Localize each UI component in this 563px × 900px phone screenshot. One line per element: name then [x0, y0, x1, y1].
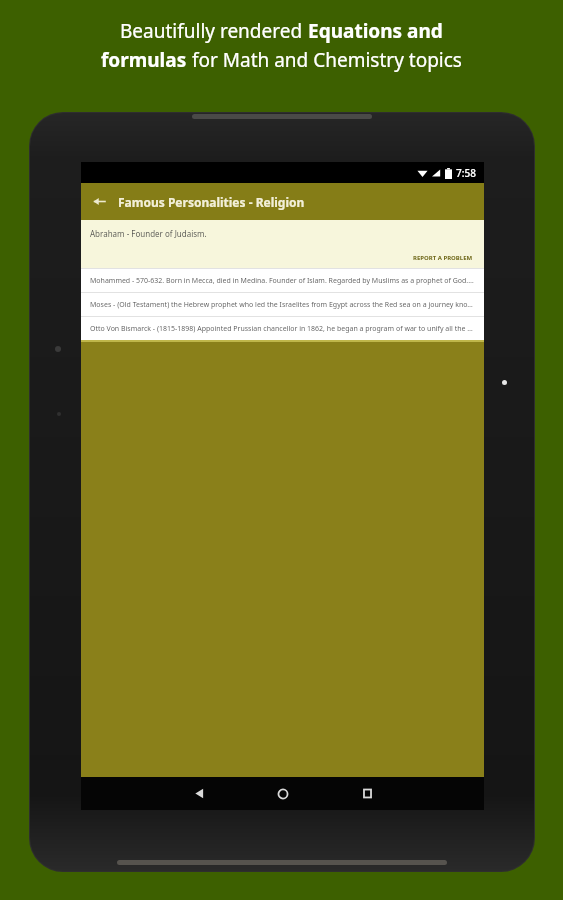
button[interactable]: Moses - (Old Testament) the Hebrew proph… [81, 293, 484, 316]
staticText: Beautifully rendered [120, 18, 308, 44]
button[interactable]: Back [81, 183, 118, 220]
button[interactable]: Otto Von Bismarck - (1815-1898) Appointe… [81, 317, 484, 340]
staticText: 7:58 [456, 166, 476, 180]
staticText: formulas [101, 47, 187, 73]
staticText: Famous Personalities - Religion [118, 194, 305, 210]
button[interactable]: Recent apps [342, 777, 392, 810]
staticText: for Math and Chemistry topics [187, 47, 462, 73]
button[interactable]: REPORT A PROBLEM [411, 253, 475, 263]
staticText: Abraham - Founder of Judaism. [90, 228, 207, 239]
staticText: Equations and [308, 18, 443, 44]
staticText: Otto Von Bismarck - (1815-1898) Appointe… [90, 324, 475, 334]
staticText: Moses - (Old Testament) the Hebrew proph… [90, 300, 475, 310]
button[interactable]: Mohammed - 570-632. Born in Mecca, died … [81, 269, 484, 292]
button[interactable]: Abraham - Founder of Judaism. [81, 220, 484, 268]
button[interactable]: Home [258, 777, 308, 810]
button[interactable]: Back [174, 777, 224, 810]
staticText: Mohammed - 570-632. Born in Mecca, died … [90, 276, 475, 286]
staticText: REPORT A PROBLEM [413, 254, 473, 262]
